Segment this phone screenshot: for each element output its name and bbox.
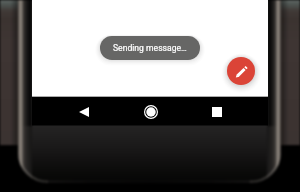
button[interactable]: Recent apps [205,97,229,126]
button[interactable]: Sending message… [100,36,200,60]
staticText: Sending message… [113,43,187,53]
button[interactable]: Compose new message [227,57,255,85]
button[interactable]: Home [139,97,163,126]
button[interactable]: Back [72,97,96,126]
